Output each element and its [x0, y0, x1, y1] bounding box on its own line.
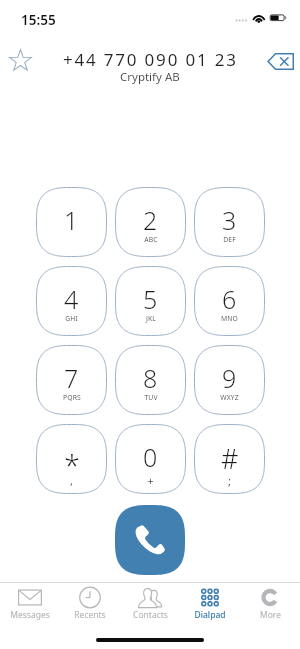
staticText: 15:55 — [21, 11, 56, 29]
staticText: 1 — [64, 203, 79, 237]
staticText: Contacts — [133, 609, 168, 621]
staticText: 3 — [222, 203, 237, 237]
staticText: Cryptify AB — [120, 69, 180, 85]
staticText: Messages — [10, 609, 50, 621]
staticText: 5 — [143, 282, 158, 316]
staticText: WXYZ — [220, 393, 239, 402]
button[interactable]: 8 — [115, 345, 186, 415]
button[interactable]: 9 — [194, 345, 265, 415]
staticText: Recents — [74, 609, 106, 621]
button[interactable]: 1 — [36, 187, 107, 257]
staticText: More — [260, 609, 281, 621]
staticText: 7 — [64, 361, 79, 395]
staticText: GHI — [65, 314, 78, 323]
button[interactable]: Call — [115, 505, 185, 575]
button[interactable]: * — [36, 424, 107, 494]
staticText: 9 — [222, 361, 237, 395]
staticText: TUV — [144, 393, 158, 402]
staticText: ABC — [144, 235, 158, 244]
staticText: 2 — [143, 203, 158, 237]
button[interactable]: 6 — [194, 266, 265, 336]
button[interactable]: More — [240, 583, 300, 606]
staticText: DEF — [223, 235, 236, 244]
staticText: , — [70, 473, 73, 488]
staticText: + — [147, 473, 154, 488]
button[interactable]: Add to favourites — [4, 44, 37, 77]
staticText: 0 — [143, 440, 158, 474]
button[interactable]: # — [194, 424, 265, 494]
staticText: PQRS — [63, 393, 81, 402]
button[interactable]: Contacts — [120, 583, 180, 606]
staticText: 4 — [64, 282, 79, 316]
button[interactable]: 3 — [194, 187, 265, 257]
button[interactable]: 5 — [115, 266, 186, 336]
staticText: 6 — [222, 282, 237, 316]
staticText: # — [221, 440, 239, 477]
staticText: JKL — [146, 314, 156, 323]
staticText: MNO — [221, 314, 238, 323]
button[interactable]: 0 — [115, 424, 186, 494]
staticText: * — [64, 445, 80, 484]
button[interactable]: Backspace — [263, 44, 297, 78]
staticText: 8 — [143, 361, 158, 395]
staticText: +44 770 090 01 23 — [63, 48, 238, 71]
button[interactable]: 2 — [115, 187, 186, 257]
button[interactable]: 7 — [36, 345, 107, 415]
button[interactable]: Messages — [0, 583, 60, 606]
staticText: ; — [228, 473, 231, 488]
staticText: Dialpad — [194, 609, 226, 621]
button[interactable]: Recents — [60, 583, 120, 606]
button[interactable]: 4 — [36, 266, 107, 336]
button[interactable]: Dialpad — [180, 583, 240, 606]
